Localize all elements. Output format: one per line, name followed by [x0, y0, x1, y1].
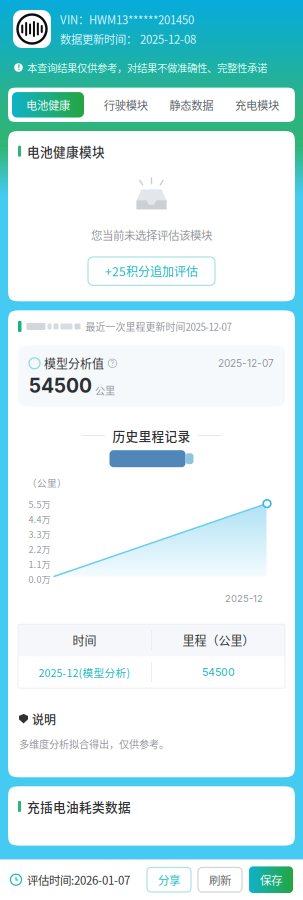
staticText: 里程（公里） — [182, 631, 254, 649]
staticText: 静态数据 — [169, 97, 213, 113]
button[interactable]: 保存 — [249, 866, 293, 893]
button[interactable]: 行驶模块 — [102, 91, 150, 119]
button[interactable]: 分享 — [147, 867, 191, 892]
button[interactable]: 刷新 — [198, 867, 242, 892]
staticText: 保存 — [260, 871, 282, 888]
staticText: 2025-12-07 — [218, 357, 274, 369]
button[interactable]: 充电模块 — [233, 91, 281, 119]
staticText: 数据更新时间： 2025-12-08 — [60, 30, 196, 47]
staticText: 说明 — [32, 710, 56, 728]
staticText: 电池健康 — [26, 97, 70, 113]
staticText: 多维度分析拟合得出，仅供参考。 — [19, 737, 169, 751]
staticText: 1.1万 — [28, 558, 50, 571]
staticText: 54500 — [29, 374, 92, 397]
staticText: 电池健康模块 — [27, 142, 105, 160]
button[interactable]: 静态数据 — [167, 91, 215, 119]
staticText: 模型分析值 — [44, 355, 104, 372]
staticText: ? — [110, 359, 114, 368]
button[interactable]: 电池健康 — [12, 92, 84, 117]
staticText: 公里 — [95, 383, 115, 397]
staticText: 行驶模块 — [104, 97, 148, 113]
staticText: 4.4万 — [28, 513, 50, 526]
staticText: 充插电油耗类数据 — [27, 797, 131, 816]
staticText: （公里） — [27, 476, 67, 490]
staticText: 分享 — [158, 871, 180, 888]
staticText: 评估时间:2026-01-07 — [27, 871, 130, 888]
staticText: 2025-12 — [225, 593, 263, 604]
staticText: 充电模块 — [235, 97, 279, 113]
staticText: 0.0万 — [28, 573, 50, 586]
staticText: 最近一次里程更新时间2025-12-07 — [85, 319, 231, 334]
staticText: 本查询结果仅供参考，对结果不做准确性、完整性承诺 — [27, 60, 267, 75]
staticText: 时间 — [72, 631, 96, 649]
staticText: 3.3万 — [28, 528, 50, 541]
staticText: VIN：HWM13******201450 — [60, 11, 194, 27]
staticText: 5.5万 — [28, 498, 50, 511]
staticText: 54500 — [202, 666, 235, 679]
staticText: 历史里程记录 — [112, 426, 190, 445]
staticText: 2025-12(模型分析) — [38, 664, 130, 680]
staticText: +25积分追加评估 — [105, 262, 198, 280]
staticText: 2.2万 — [28, 543, 50, 556]
staticText: 您当前未选择评估该模块 — [91, 226, 212, 243]
staticText: 刷新 — [209, 871, 231, 888]
button[interactable]: +25积分追加评估 — [88, 257, 215, 285]
staticText: ! — [17, 63, 19, 72]
